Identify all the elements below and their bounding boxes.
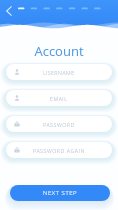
button[interactable]: Back — [1, 3, 17, 19]
button[interactable]: PASSWORD — [6, 116, 112, 132]
staticText: NEXT STEP — [43, 189, 78, 197]
button[interactable]: EMAIL — [6, 90, 112, 106]
staticText: EMAIL — [50, 95, 68, 102]
button[interactable]: PASSWORD AGAIN — [6, 142, 112, 158]
staticText: PASSWORD AGAIN — [33, 147, 85, 154]
staticText: Account — [0, 42, 118, 60]
staticText: USERNAME — [43, 69, 75, 76]
button[interactable]: NEXT STEP — [10, 185, 110, 201]
button[interactable]: USERNAME — [6, 64, 112, 80]
staticText: PASSWORD — [43, 121, 75, 128]
